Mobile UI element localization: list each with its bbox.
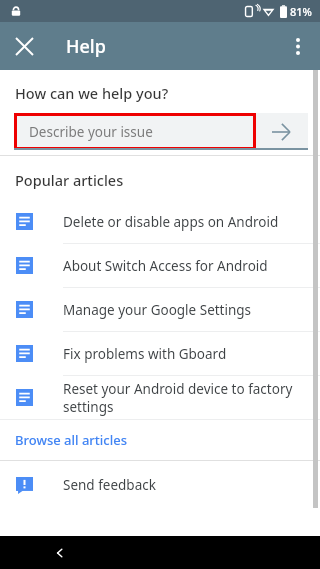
- button[interactable]: Manage your Google Settings: [0, 288, 320, 331]
- staticText: Delete or disable apps on Android: [63, 213, 279, 231]
- button[interactable]: Send feedback: [0, 468, 320, 502]
- staticText: Browse all articles: [15, 431, 128, 449]
- staticText: 81%: [290, 4, 312, 19]
- staticText: Describe your issue: [29, 123, 153, 141]
- staticText: About Switch Access for Android: [63, 257, 268, 275]
- button[interactable]: Browse all articles: [0, 420, 320, 460]
- button[interactable]: Back: [44, 537, 76, 569]
- button[interactable]: Search: [264, 115, 298, 149]
- button[interactable]: Describe your issue: [14, 113, 308, 150]
- button[interactable]: Delete or disable apps on Android: [0, 200, 320, 243]
- button[interactable]: More options: [278, 26, 318, 66]
- staticText: Send feedback: [63, 476, 156, 494]
- staticText: Popular articles: [15, 170, 124, 190]
- staticText: Help: [66, 34, 106, 59]
- staticText: How can we help you?: [15, 83, 169, 103]
- staticText: Reset your Android device to factory set…: [63, 380, 294, 416]
- staticText: Fix problems with Gboard: [63, 345, 227, 363]
- staticText: Manage your Google Settings: [63, 301, 252, 319]
- button[interactable]: Fix problems with Gboard: [0, 332, 320, 375]
- button[interactable]: Reset your Android device to factory set…: [0, 376, 320, 419]
- button[interactable]: About Switch Access for Android: [0, 244, 320, 287]
- button[interactable]: Close: [4, 26, 44, 66]
